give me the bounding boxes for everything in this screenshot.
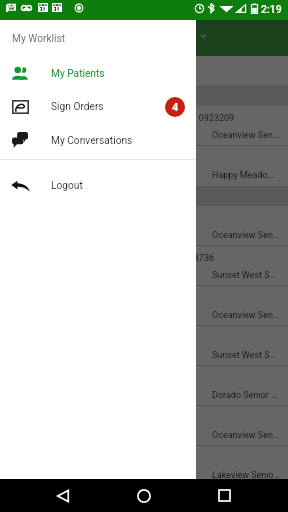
staticText: 2:19 [261, 3, 282, 15]
button[interactable]: My Patients [48, 20, 288, 56]
button[interactable]: Young, Alice (F, 77) [0, 406, 288, 446]
button[interactable]: Wright, Donna (F, 74) [0, 326, 288, 366]
button[interactable]: My Patients [0, 57, 196, 90]
button[interactable]: Home [128, 479, 160, 512]
staticText: Oceanview Senior Living Center [212, 130, 280, 141]
staticText: Sign Orders [51, 101, 104, 113]
staticText: My Patients [48, 31, 118, 46]
staticText: Williams, Deborah T. (F 72) Rm 108-A MRN… [10, 253, 215, 264]
button[interactable]: Garcia, Roberto (M, 81) [0, 206, 288, 246]
button[interactable] [0, 56, 288, 87]
staticText: Oceanview Senior Living Center [212, 430, 280, 441]
button[interactable]: Nelson, Paul (M, 69) [0, 286, 288, 326]
staticText: Oceanview Senior Living Center [212, 230, 280, 241]
staticText: Oceanview Senior Living Center [212, 310, 280, 321]
button[interactable]: Open navigation drawer [12, 30, 28, 46]
button[interactable]: Sign Orders [0, 90, 196, 123]
button[interactable]: Thompson, Richard A. (M 78) Rm 214-B MRN… [0, 106, 288, 146]
staticText: My Worklist [12, 33, 66, 45]
staticText: Happy Meadows Care Home [212, 170, 280, 181]
staticText: Dorado Senior Care Facility [212, 390, 280, 401]
button[interactable]: Lee, Karen (F, 66) [0, 146, 288, 187]
staticText: Thompson, Richard A. (M 78) Rm 214-B MRN… [10, 113, 235, 124]
staticText: My Conversations [51, 135, 133, 147]
button[interactable]: Carter, James (M, 70) [0, 446, 288, 486]
button[interactable]: Hall, Steven (M, 83) [0, 366, 288, 406]
staticText: Lee, Karen (F, 66) [10, 153, 79, 164]
staticText: Sunset West Senior Residence [212, 350, 280, 361]
button[interactable]: Williams, Deborah T. (F 72) Rm 108-A MRN… [0, 246, 288, 286]
staticText: Sunset West Senior Residence [212, 270, 280, 281]
staticText: My Patients [51, 68, 105, 80]
button[interactable]: Recent apps [208, 479, 240, 512]
staticText: Logout [51, 180, 83, 192]
button[interactable]: Back [47, 479, 79, 512]
staticText: 4 [172, 101, 179, 114]
button[interactable]: Logout [0, 169, 196, 203]
button[interactable]: My Conversations [0, 123, 196, 159]
staticText: Lakeview Senior Care [212, 470, 280, 481]
